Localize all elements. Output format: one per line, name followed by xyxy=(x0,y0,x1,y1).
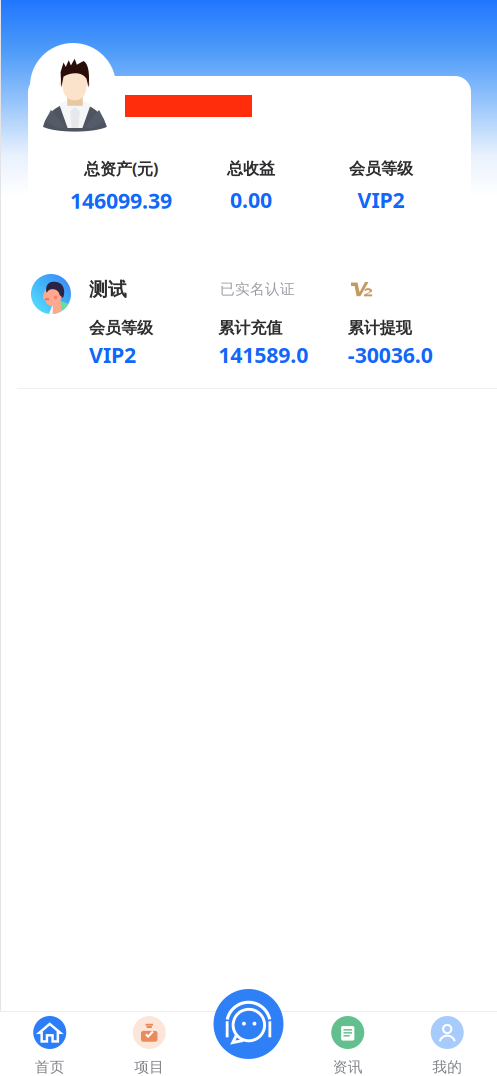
button[interactable]: 在线客服 xyxy=(213,989,283,1059)
staticText: 累计提现 xyxy=(348,318,412,338)
staticText: 已实名认证 xyxy=(220,280,295,298)
staticText: 测试 xyxy=(89,278,127,301)
button[interactable]: 项目 xyxy=(99,1012,199,1076)
staticText: 资讯 xyxy=(333,1058,363,1076)
staticText: 146099.39 xyxy=(70,186,172,214)
staticText: 累计充值 xyxy=(218,318,282,338)
staticText: 我的 xyxy=(432,1058,462,1076)
staticText: 会员等级 xyxy=(89,318,153,338)
staticText: 项目 xyxy=(134,1058,164,1076)
button[interactable]: 资讯 xyxy=(298,1012,397,1076)
staticText: 总收益 xyxy=(227,159,275,178)
staticText: 0.00 xyxy=(230,185,272,214)
staticText: 总资产(元) xyxy=(84,158,158,179)
staticText: 首页 xyxy=(35,1058,65,1076)
staticText: -30036.0 xyxy=(348,341,433,369)
staticText: VIP2 xyxy=(89,341,136,369)
button[interactable]: 首页 xyxy=(0,1012,99,1076)
staticText: 141589.0 xyxy=(218,341,308,369)
button[interactable]: 我的 xyxy=(397,1012,497,1076)
staticText: VIP2 xyxy=(357,185,404,214)
staticText: 会员等级 xyxy=(349,159,413,178)
